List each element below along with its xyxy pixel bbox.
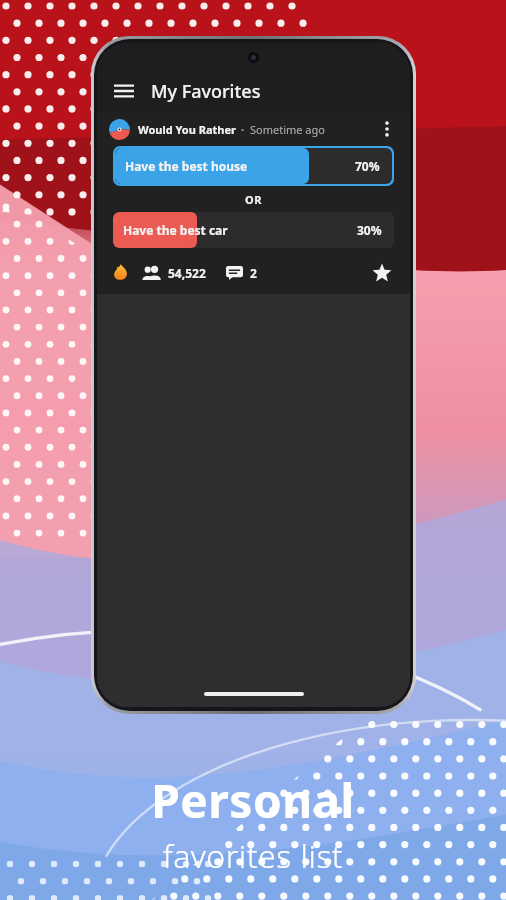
button[interactable]: Favorite xyxy=(370,261,394,285)
staticText: 30% xyxy=(357,222,382,238)
button[interactable]: Have the best house xyxy=(115,148,392,184)
staticText: favorites list xyxy=(0,834,506,878)
button[interactable]: Open navigation menu xyxy=(111,78,137,104)
staticText: Have the best house xyxy=(125,158,248,174)
button[interactable]: Have the best house xyxy=(115,148,392,184)
staticText: 70% xyxy=(355,158,380,174)
staticText: OR xyxy=(245,192,263,207)
staticText: · xyxy=(241,122,245,137)
button[interactable]: More options xyxy=(376,118,398,140)
staticText: Would You Rather xyxy=(138,122,236,137)
staticText: Have the best car xyxy=(123,222,228,238)
staticText: Personal xyxy=(0,769,506,832)
staticText: 54,522 xyxy=(168,265,206,281)
button[interactable]: Have the best car xyxy=(113,212,394,248)
staticText: 2 xyxy=(250,265,257,281)
staticText: Sometime ago xyxy=(250,122,325,137)
staticText: My Favorites xyxy=(151,79,261,104)
